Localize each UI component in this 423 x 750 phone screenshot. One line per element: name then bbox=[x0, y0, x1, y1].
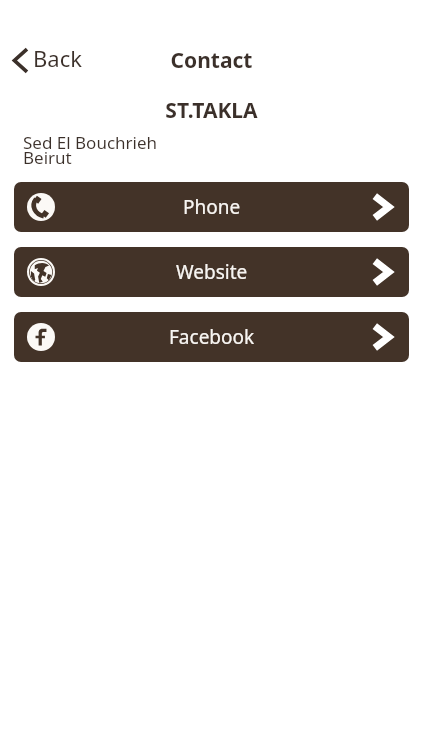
other: Call phone bbox=[27, 193, 55, 221]
staticText: Contact bbox=[0, 46, 423, 75]
other: Open website bbox=[27, 258, 55, 286]
other: Open Facebook bbox=[373, 324, 391, 350]
button[interactable]: Open Facebook bbox=[14, 312, 409, 362]
staticText: Phone bbox=[183, 194, 241, 220]
button[interactable]: Open website bbox=[14, 247, 409, 297]
button[interactable]: Call phone bbox=[14, 182, 409, 232]
other: Open Facebook bbox=[27, 323, 55, 351]
staticText: Sed El Bouchrieh bbox=[23, 131, 158, 154]
staticText: ST.TAKLA bbox=[0, 96, 423, 125]
button[interactable]: Back bbox=[7, 36, 90, 84]
staticText: Beirut bbox=[23, 146, 72, 169]
staticText: Facebook bbox=[169, 324, 255, 350]
other: Open Website bbox=[373, 259, 391, 285]
other: Open Phone bbox=[373, 194, 391, 220]
staticText: Website bbox=[176, 259, 248, 285]
staticText: Back bbox=[33, 43, 82, 73]
